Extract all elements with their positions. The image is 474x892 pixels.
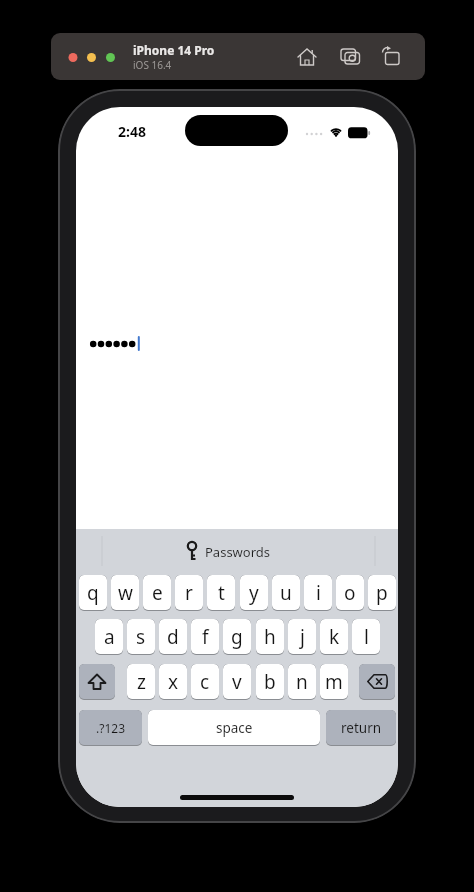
staticText: r (185, 580, 193, 606)
button[interactable]: z (127, 664, 155, 700)
button[interactable]: h (256, 619, 284, 655)
staticText: return (341, 719, 382, 737)
button[interactable]: x (159, 664, 187, 700)
staticText: f (202, 624, 209, 650)
staticText: m (325, 669, 343, 695)
staticText: 2:48 (118, 122, 146, 141)
staticText: space (216, 719, 253, 737)
button[interactable]: o (336, 575, 364, 611)
button[interactable]: t (207, 575, 235, 611)
staticText: e (152, 580, 163, 606)
staticText: a (104, 624, 115, 650)
staticText: b (264, 669, 276, 695)
staticText: x (168, 669, 179, 695)
staticText: z (137, 669, 146, 695)
button[interactable]: l (352, 619, 380, 655)
staticText: l (364, 624, 369, 650)
button[interactable] (381, 46, 403, 68)
button[interactable]: e (143, 575, 171, 611)
button[interactable] (359, 664, 395, 700)
button[interactable]: d (159, 619, 187, 655)
button[interactable]: return (326, 710, 396, 746)
button[interactable]: y (240, 575, 268, 611)
button[interactable]: s (127, 619, 155, 655)
button[interactable]: b (256, 664, 284, 700)
button[interactable]: Passwords (76, 529, 398, 573)
button[interactable]: w (111, 575, 139, 611)
button[interactable]: p (368, 575, 396, 611)
button[interactable] (79, 664, 115, 700)
staticText: p (376, 580, 388, 606)
staticText: o (344, 580, 356, 606)
staticText: t (218, 580, 225, 606)
staticText: j (300, 624, 305, 650)
button[interactable]: n (288, 664, 316, 700)
staticText: s (136, 624, 146, 650)
staticText: h (264, 624, 276, 650)
button[interactable]: m (320, 664, 348, 700)
button[interactable]: space (148, 710, 320, 746)
staticText: n (296, 669, 308, 695)
staticText: w (118, 580, 133, 606)
button[interactable]: k (320, 619, 348, 655)
staticText: iOS 16.4 (133, 58, 172, 72)
staticText: q (87, 580, 99, 606)
button[interactable]: f (191, 619, 219, 655)
button[interactable] (296, 46, 318, 68)
staticText: c (200, 669, 210, 695)
button[interactable]: q (79, 575, 107, 611)
staticText: g (231, 624, 243, 650)
staticText: u (280, 580, 292, 606)
button[interactable]: g (223, 619, 251, 655)
staticText: v (232, 669, 242, 695)
button[interactable]: i (304, 575, 332, 611)
button[interactable]: c (191, 664, 219, 700)
button[interactable]: v (223, 664, 251, 700)
button[interactable]: a (95, 619, 123, 655)
button[interactable]: j (288, 619, 316, 655)
button[interactable]: .?123 (79, 710, 142, 746)
button[interactable]: u (272, 575, 300, 611)
button[interactable]: r (175, 575, 203, 611)
button[interactable] (84, 329, 390, 359)
staticText: .?123 (96, 720, 126, 736)
button[interactable] (337, 47, 360, 67)
staticText: y (249, 580, 259, 606)
staticText: k (329, 624, 340, 650)
staticText: Passwords (205, 543, 271, 561)
staticText: iPhone 14 Pro (133, 42, 215, 58)
staticText: d (167, 624, 179, 650)
staticText: i (316, 580, 321, 606)
